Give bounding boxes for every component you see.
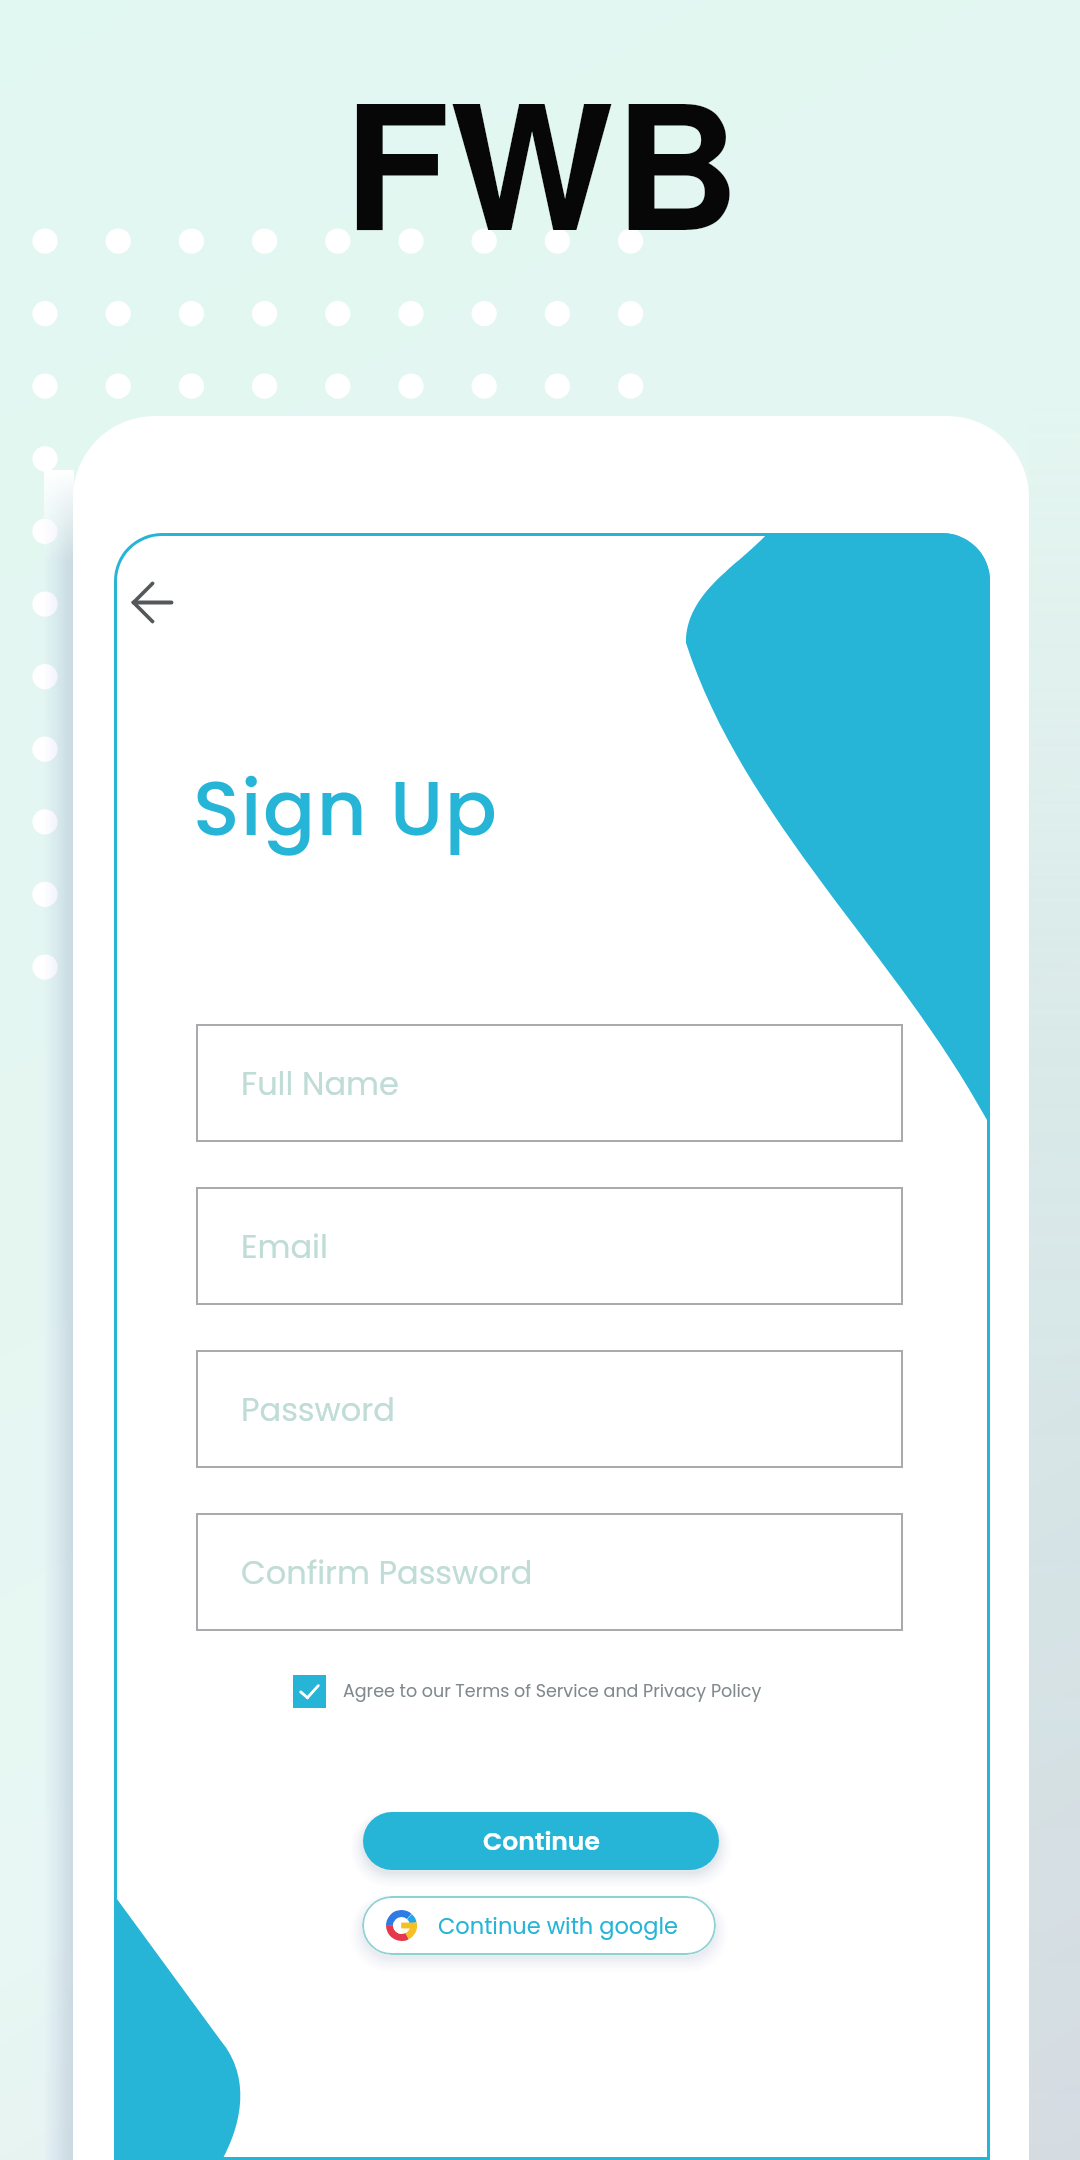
staticText: Password — [241, 1387, 395, 1432]
button[interactable]: Email — [196, 1187, 903, 1305]
button[interactable]: Confirm Password — [196, 1513, 903, 1631]
button[interactable]: Full Name — [196, 1024, 903, 1142]
staticText: Full Name — [241, 1061, 399, 1106]
staticText: Email — [241, 1224, 328, 1269]
staticText: Confirm Password — [241, 1550, 533, 1595]
staticText: FWB — [343, 92, 737, 265]
button[interactable]: Agree to our Terms of Service and Privac… — [293, 1675, 762, 1708]
staticText: Agree to our Terms of Service and Privac… — [343, 1679, 762, 1704]
button[interactable]: Password — [196, 1350, 903, 1468]
button[interactable]: Back — [114, 559, 195, 645]
button[interactable]: Continue — [363, 1812, 719, 1870]
staticText: Continue with google — [438, 1910, 678, 1941]
staticText: Continue — [483, 1824, 600, 1859]
staticText: Sign Up — [193, 754, 499, 862]
button[interactable]: Continue with google — [362, 1896, 716, 1955]
